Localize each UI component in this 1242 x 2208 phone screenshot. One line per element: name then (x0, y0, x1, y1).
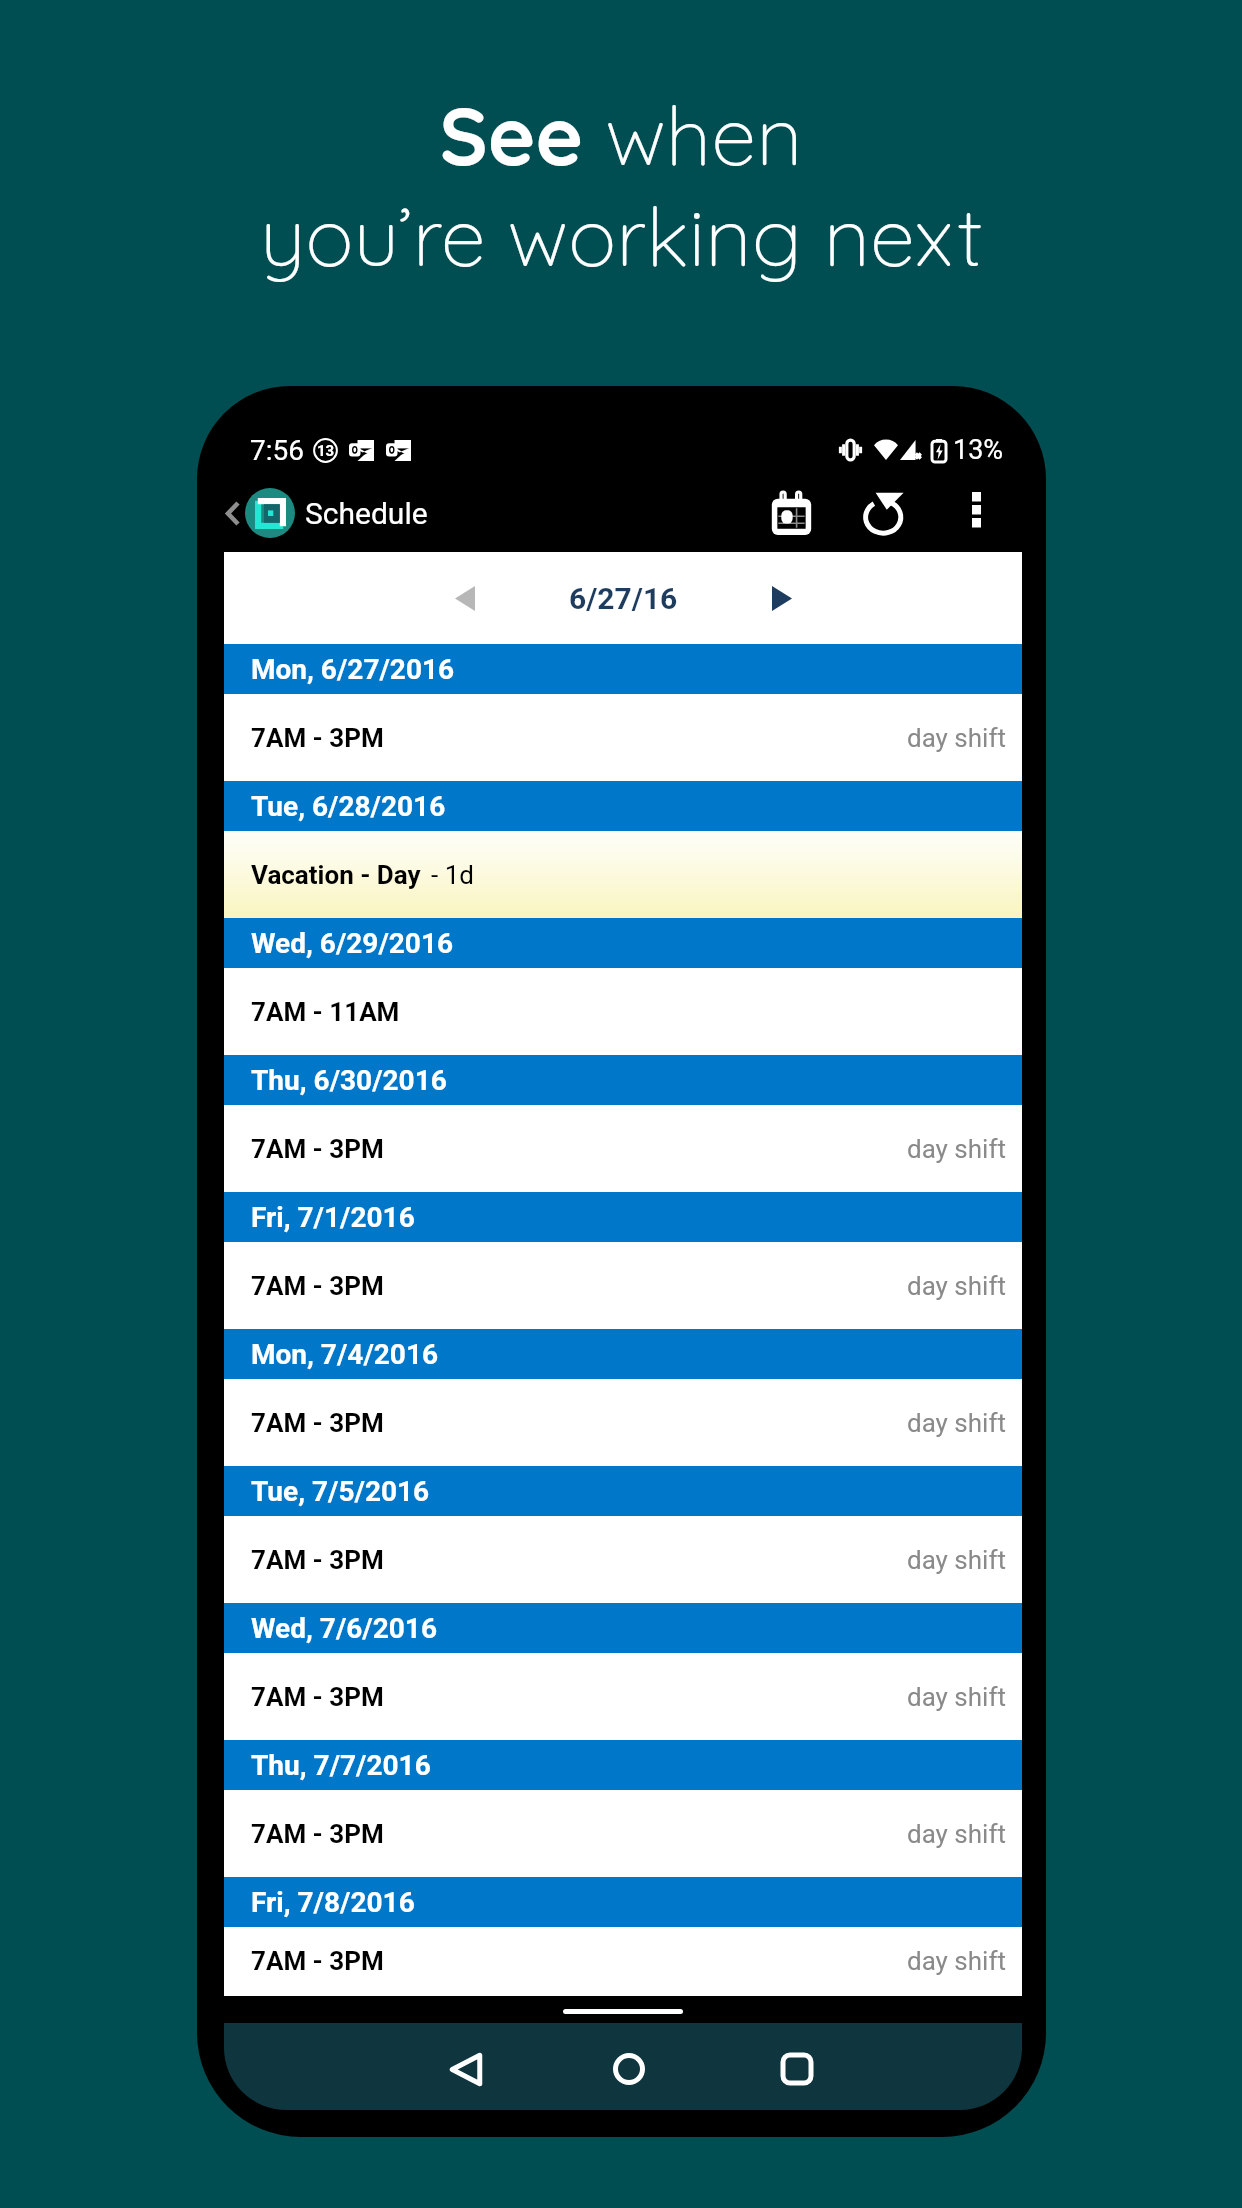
button[interactable]: Recent apps (755, 2028, 839, 2110)
staticText: 7AM - 3PM (251, 1545, 384, 1575)
staticText: 7AM - 3PM (251, 1946, 384, 1976)
button[interactable]: 7AM - 3PM (224, 1105, 1022, 1192)
staticText: 7AM - 3PM (251, 1134, 384, 1164)
button[interactable]: Calendar (757, 479, 825, 547)
button[interactable]: Previous week (428, 561, 502, 635)
staticText: Wed, 7/6/2016 (251, 1612, 437, 1645)
button[interactable]: 7AM - 3PM (224, 694, 1022, 781)
button[interactable]: Next week (745, 561, 819, 635)
staticText: Tue, 7/5/2016 (251, 1475, 430, 1508)
button[interactable]: 7AM - 11AM (224, 968, 1022, 1055)
staticText: Schedule (305, 496, 428, 531)
button[interactable]: Refresh (850, 479, 918, 547)
staticText: day shift (907, 1271, 1006, 1301)
button[interactable]: Mon, 7/4/2016 (224, 1329, 1022, 1379)
staticText: day shift (907, 1819, 1006, 1849)
button[interactable]: Thu, 7/7/2016 (224, 1740, 1022, 1790)
staticText: you’re working next (260, 185, 983, 286)
staticText: 7AM - 3PM (251, 1819, 384, 1849)
button[interactable]: 7AM - 3PM (224, 1379, 1022, 1466)
staticText: day shift (907, 1946, 1006, 1976)
button[interactable]: Schedule (243, 481, 438, 545)
button[interactable]: Wed, 6/29/2016 (224, 918, 1022, 968)
staticText: Mon, 7/4/2016 (251, 1338, 439, 1371)
staticText: Fri, 7/8/2016 (251, 1886, 415, 1919)
staticText: Thu, 6/30/2016 (251, 1064, 447, 1097)
button[interactable]: Wed, 7/6/2016 (224, 1603, 1022, 1653)
button[interactable]: Fri, 7/8/2016 (224, 1877, 1022, 1927)
staticText: See when (439, 84, 803, 185)
button[interactable]: 7AM - 3PM (224, 1790, 1022, 1877)
button[interactable]: Tue, 7/5/2016 (224, 1466, 1022, 1516)
staticText: Wed, 6/29/2016 (251, 927, 454, 960)
button[interactable]: Back (424, 2028, 508, 2110)
staticText: 6/27/16 (569, 581, 678, 616)
button[interactable]: Mon, 6/27/2016 (224, 644, 1022, 694)
staticText: 7AM - 11AM (251, 997, 400, 1027)
button[interactable]: 7AM - 3PM (224, 1927, 1022, 1995)
button[interactable]: 7AM - 3PM (224, 1653, 1022, 1740)
button[interactable]: Navigate up (217, 485, 249, 541)
staticText: day shift (907, 1545, 1006, 1575)
staticText: day shift (907, 1682, 1006, 1712)
staticText: - 1d (431, 860, 474, 890)
staticText: Thu, 7/7/2016 (251, 1749, 431, 1782)
button[interactable]: 7AM - 3PM (224, 1516, 1022, 1603)
staticText: day shift (907, 1134, 1006, 1164)
staticText: Fri, 7/1/2016 (251, 1201, 415, 1234)
staticText: 7AM - 3PM (251, 1408, 384, 1438)
staticText: day shift (907, 723, 1006, 753)
button[interactable]: More options (946, 479, 1006, 539)
button[interactable]: Home (587, 2028, 671, 2110)
button[interactable]: Fri, 7/1/2016 (224, 1192, 1022, 1242)
staticText: 13 (317, 442, 335, 460)
staticText: 13% (953, 434, 1004, 466)
staticText: 7AM - 3PM (251, 723, 384, 753)
button[interactable]: Tue, 6/28/2016 (224, 781, 1022, 831)
button[interactable]: Vacation - Day (224, 831, 1022, 918)
staticText: Vacation - Day (251, 860, 421, 890)
staticText: Mon, 6/27/2016 (251, 653, 455, 686)
staticText: 7:56 (250, 434, 304, 467)
staticText: Tue, 6/28/2016 (251, 790, 446, 823)
staticText: day shift (907, 1408, 1006, 1438)
button[interactable]: Thu, 6/30/2016 (224, 1055, 1022, 1105)
button[interactable]: 7AM - 3PM (224, 1242, 1022, 1329)
staticText: 7AM - 3PM (251, 1271, 384, 1301)
staticText: 7AM - 3PM (251, 1682, 384, 1712)
